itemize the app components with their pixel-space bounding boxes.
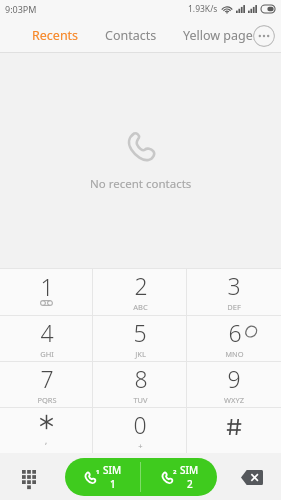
button[interactable]: Contacts [103, 27, 159, 44]
button[interactable]: 0 [93, 408, 187, 453]
staticText: GHI [40, 349, 54, 359]
staticText: 0 [133, 409, 147, 440]
staticText: JKL [135, 349, 146, 359]
staticText: 1 [96, 468, 100, 476]
staticText: Recents [32, 27, 79, 44]
button[interactable]: 2 [93, 269, 187, 315]
button[interactable]: Recents [30, 27, 81, 44]
staticText: 1.93K/s [188, 3, 218, 15]
button[interactable]: Delete [235, 460, 269, 494]
staticText: Yellow pages [183, 27, 259, 44]
button[interactable]: 3 [187, 269, 281, 315]
staticText: , [45, 435, 48, 446]
button[interactable]: 5 [93, 316, 187, 361]
staticText: 1 [110, 477, 116, 491]
staticText: 9 [227, 363, 241, 394]
staticText: 9:03PM [5, 3, 37, 15]
staticText: MNO [225, 349, 244, 359]
button[interactable]: 6 [187, 316, 281, 361]
staticText: 7 [40, 363, 54, 394]
staticText: Contacts [105, 27, 157, 44]
staticText: SIM [180, 463, 199, 477]
staticText: 5 [133, 317, 147, 348]
staticText: DEF [227, 302, 241, 312]
staticText: 2 [173, 468, 177, 476]
staticText: SIM [103, 463, 122, 477]
staticText: WXYZ [224, 395, 244, 405]
button[interactable]: 1 [65, 458, 140, 496]
button[interactable]: 9 [187, 362, 281, 407]
staticText: No recent contacts [90, 176, 192, 192]
staticText: 2 [187, 477, 193, 491]
staticText: ABC [133, 302, 148, 312]
staticText: 6 [228, 317, 242, 348]
button[interactable]: 2 [141, 458, 217, 496]
staticText: 8 [134, 363, 148, 394]
button[interactable]: More options [253, 25, 275, 47]
button[interactable] [187, 408, 281, 453]
button[interactable]: 7 [0, 362, 93, 407]
staticText: 4 [40, 317, 54, 348]
staticText: 1 [40, 271, 54, 302]
button[interactable]: Yellow pages [181, 27, 261, 44]
staticText: PQRS [37, 395, 57, 405]
staticText: 2 [134, 270, 148, 301]
staticText: 3 [227, 270, 241, 301]
button[interactable]: Keypad [12, 460, 46, 494]
button[interactable]: 4 [0, 316, 93, 361]
staticText: TUV [133, 395, 148, 405]
staticText: + [138, 441, 143, 451]
button[interactable]: 8 [93, 362, 187, 407]
button[interactable]: , [0, 408, 93, 453]
button[interactable]: 1 [0, 269, 93, 315]
